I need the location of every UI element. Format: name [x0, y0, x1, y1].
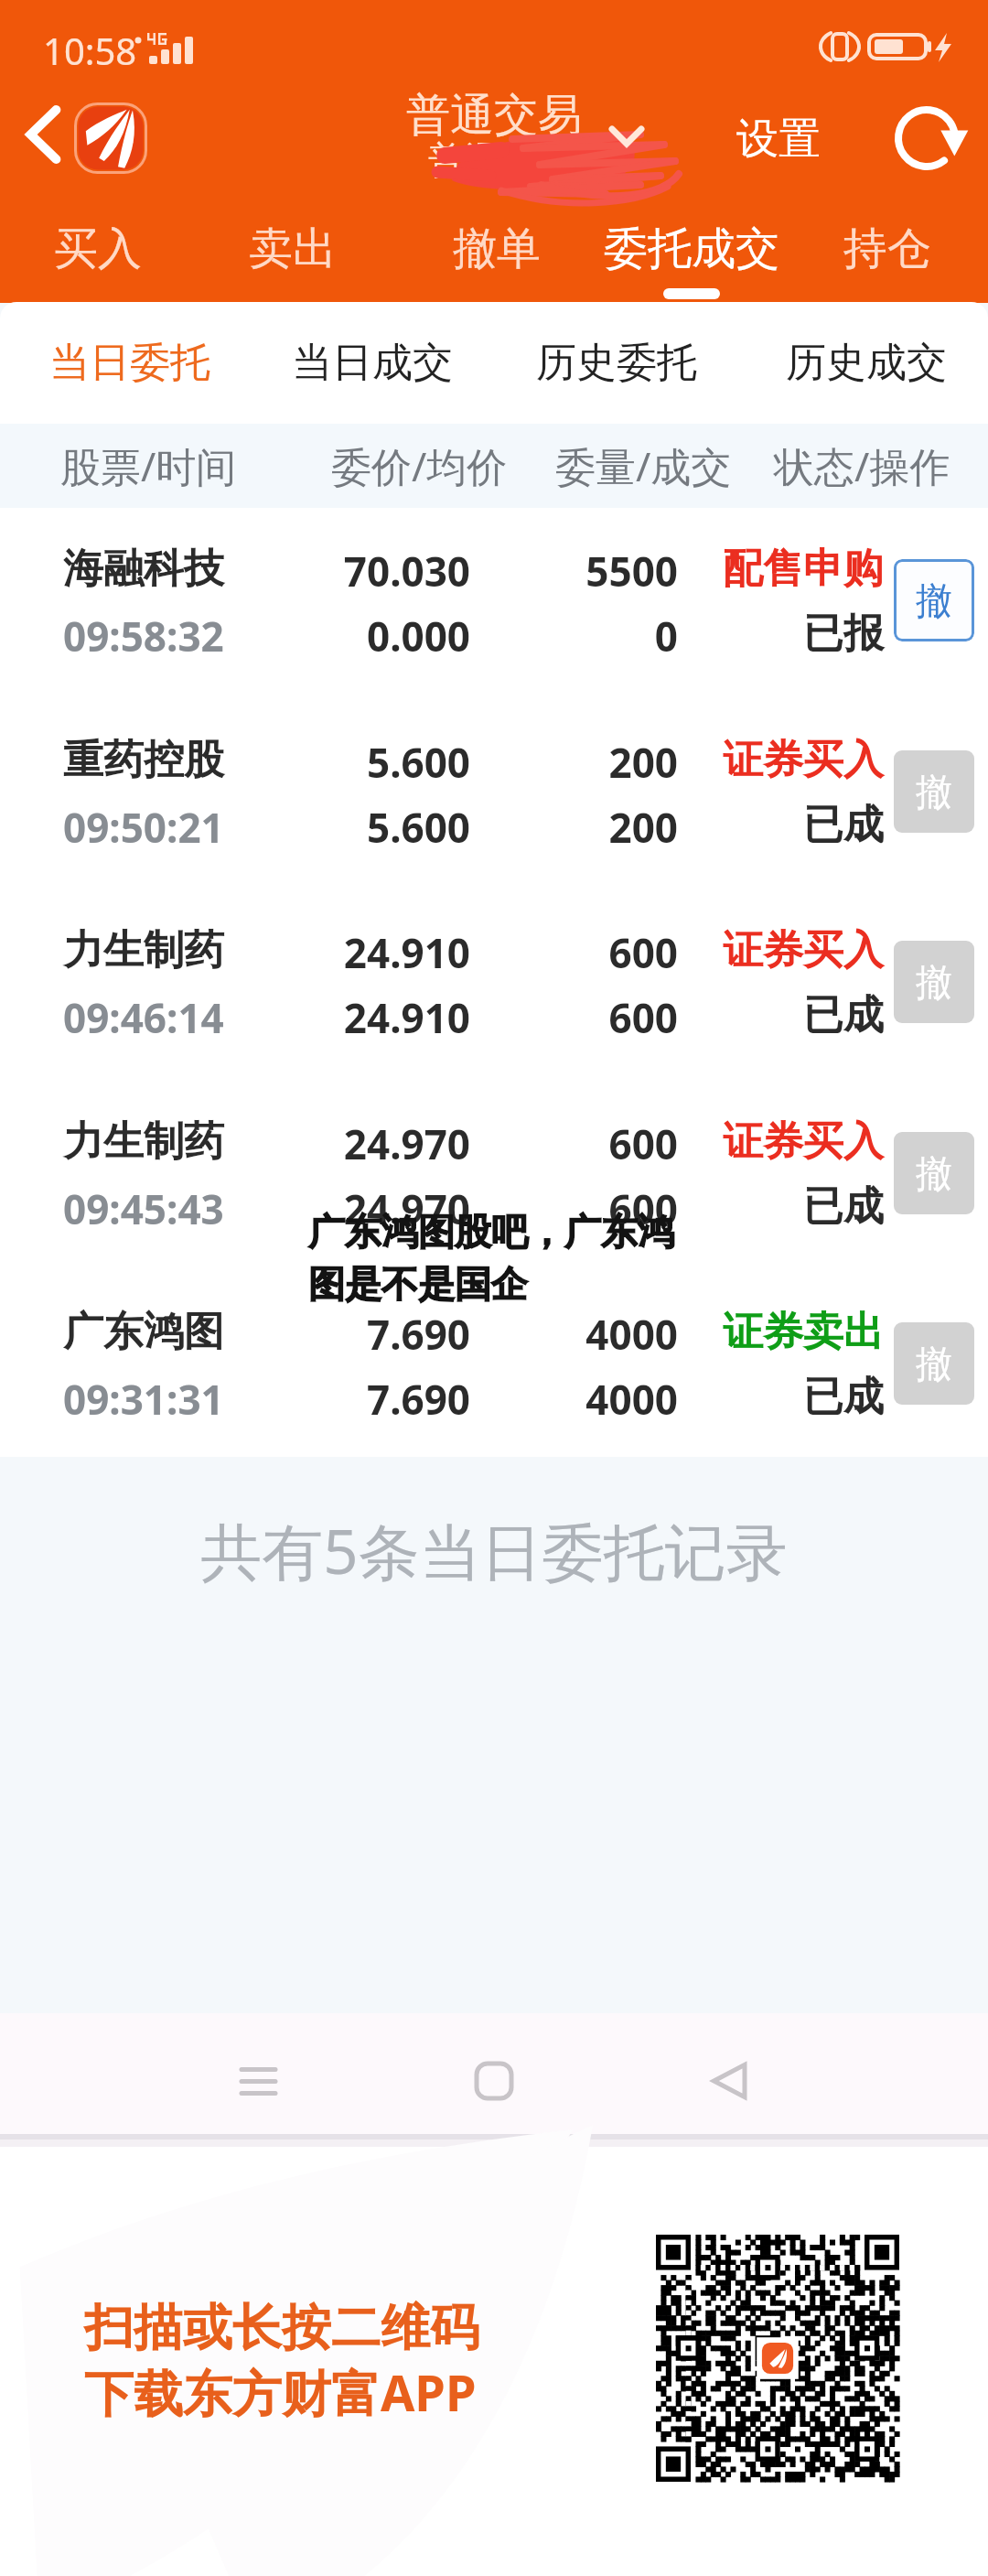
- staticText: 600: [495, 1116, 678, 1171]
- staticText: 撤: [916, 1341, 952, 1386]
- staticText: 0.000: [214, 609, 470, 663]
- staticText: 24.970: [214, 1116, 470, 1171]
- staticText: 5500: [495, 544, 678, 598]
- staticText: 下载东方财富APP: [84, 2358, 477, 2426]
- button[interactable]: 东方财富 logo: [74, 102, 147, 174]
- staticText: 委托成交: [604, 221, 779, 276]
- staticText: 扫描或长按二维码: [84, 2297, 479, 2359]
- button[interactable]: 重药控股: [0, 699, 988, 889]
- staticText: 09:45:43: [63, 1181, 224, 1236]
- staticText: 24.910: [214, 925, 470, 980]
- staticText: 配售申购: [692, 544, 884, 594]
- staticText: 200: [495, 800, 678, 855]
- button[interactable]: Refresh: [881, 92, 972, 184]
- staticText: 已成: [692, 1181, 884, 1232]
- staticText: 5.600: [214, 800, 470, 855]
- staticText: 09:31:31: [63, 1372, 224, 1427]
- staticText: 09:50:21: [63, 800, 224, 855]
- staticText: 撤: [916, 577, 952, 623]
- button[interactable]: 撤单: [894, 941, 974, 1023]
- staticText: 600: [495, 990, 678, 1045]
- button[interactable]: 力生制药: [0, 889, 988, 1079]
- button[interactable]: 撤单: [894, 1132, 974, 1214]
- staticText: 600: [495, 1181, 678, 1236]
- staticText: 10:58: [43, 26, 137, 75]
- staticText: 撤: [916, 1150, 952, 1196]
- staticText: 持仓: [843, 221, 931, 276]
- staticText: 已成: [692, 800, 884, 850]
- staticText: 共有5条当日委托记录: [0, 1508, 988, 1592]
- staticText: 力生制药: [63, 1116, 224, 1167]
- staticText: 4000: [495, 1372, 678, 1427]
- button[interactable]: 委托成交: [587, 199, 796, 303]
- button[interactable]: 当日成交: [274, 302, 471, 424]
- staticText: 0: [495, 609, 678, 663]
- staticText: 广东鸿图股吧，广东鸿: [308, 1209, 674, 1255]
- staticText: 200: [495, 735, 678, 790]
- staticText: 海融科技: [63, 544, 224, 594]
- button[interactable]: 海融科技: [0, 508, 988, 697]
- staticText: 股票/时间: [60, 438, 237, 493]
- staticText: 卖出: [249, 221, 337, 276]
- button[interactable]: 撤单: [894, 1322, 974, 1405]
- staticText: 证券买入: [692, 735, 884, 785]
- button[interactable]: Back: [9, 101, 77, 168]
- button[interactable]: 当日委托: [31, 302, 229, 424]
- staticText: 24.970: [214, 1181, 470, 1236]
- button[interactable]: 卖出: [233, 199, 352, 303]
- staticText: 5.600: [214, 735, 470, 790]
- button[interactable]: 买入: [38, 199, 157, 303]
- staticText: 历史委托: [536, 338, 697, 388]
- staticText: 证券买入: [692, 1116, 884, 1167]
- staticText: 图是不是国企: [308, 1261, 528, 1307]
- button[interactable]: 撤单: [437, 199, 556, 303]
- button[interactable]: 撤单: [894, 559, 974, 641]
- staticText: 09:58:32: [63, 609, 224, 663]
- staticText: 7.690: [214, 1372, 470, 1427]
- button[interactable]: 撤单: [894, 750, 974, 833]
- staticText: 证券买入: [692, 925, 884, 975]
- staticText: 委价/均价: [331, 438, 508, 493]
- staticText: 当日委托: [49, 338, 210, 388]
- staticText: 撤单: [453, 221, 541, 276]
- staticText: 普通: [428, 137, 501, 183]
- staticText: 4000: [495, 1307, 678, 1362]
- button[interactable]: 历史委托: [518, 302, 715, 424]
- button[interactable]: 广东鸿图: [0, 1271, 988, 1457]
- button[interactable]: Recent apps: [212, 2035, 304, 2127]
- staticText: 24.910: [214, 990, 470, 1045]
- staticText: 已报: [692, 609, 884, 659]
- staticText: 已成: [692, 1372, 884, 1422]
- button[interactable]: 力生制药: [0, 1081, 988, 1270]
- staticText: 买入: [54, 221, 142, 276]
- button[interactable]: 设置: [725, 101, 832, 178]
- staticText: 状态/操作: [774, 438, 950, 493]
- staticText: 广东鸿图: [63, 1307, 224, 1357]
- staticText: 7.690: [214, 1307, 470, 1362]
- staticText: 70.030: [214, 544, 470, 598]
- staticText: 普通交易: [0, 88, 988, 143]
- staticText: 力生制药: [63, 925, 224, 975]
- staticText: 设置: [736, 113, 821, 166]
- staticText: 600: [495, 925, 678, 980]
- staticText: 已成: [692, 990, 884, 1040]
- staticText: 当日成交: [292, 338, 453, 388]
- button[interactable]: 持仓: [828, 199, 947, 303]
- staticText: 重药控股: [63, 735, 224, 785]
- staticText: 撤: [916, 769, 952, 814]
- staticText: 撤: [916, 959, 952, 1005]
- button[interactable]: 历史成交: [768, 302, 965, 424]
- staticText: 委量/成交: [555, 438, 732, 493]
- staticText: 历史成交: [786, 338, 947, 388]
- button[interactable]: Home: [448, 2035, 540, 2127]
- staticText: 09:46:14: [63, 990, 224, 1045]
- staticText: 证券卖出: [692, 1307, 884, 1357]
- button[interactable]: Back: [684, 2035, 776, 2127]
